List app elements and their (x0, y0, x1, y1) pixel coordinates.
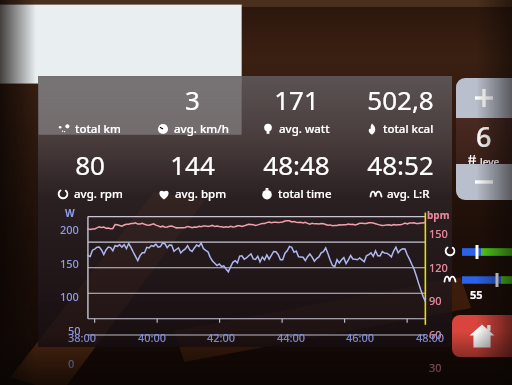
staticText: avg. L:R (387, 186, 430, 202)
staticText: avg. bpm (175, 186, 227, 202)
staticText: 3 (185, 82, 200, 117)
staticText: 30 (429, 360, 442, 375)
staticText: 44:00 (277, 330, 306, 345)
staticText: 50 (68, 323, 81, 338)
staticText: 0 (68, 356, 75, 371)
button[interactable]: Home (452, 315, 512, 357)
staticText: 150 (60, 256, 79, 271)
staticText: 48:52 (367, 147, 434, 182)
button[interactable]: 3 (141, 76, 244, 142)
staticText: 60 (429, 327, 442, 342)
button[interactable]: 502,8 (348, 76, 452, 142)
staticText: avg. watt (279, 121, 330, 137)
staticText: 90 (429, 293, 442, 308)
staticText: 150 (429, 226, 448, 241)
button[interactable]: 80 (38, 142, 141, 206)
staticText: leve (480, 155, 500, 164)
staticText: avg. rpm (74, 186, 123, 202)
staticText: 6 (476, 118, 492, 155)
staticText: total km (75, 121, 121, 137)
staticText: 42:00 (207, 330, 236, 345)
button[interactable]: 48:52 (348, 142, 452, 206)
button[interactable]: total km (38, 76, 141, 142)
staticText: 48:48 (263, 147, 330, 182)
staticText: 200 (60, 222, 79, 237)
staticText: avg. km/h (174, 121, 229, 137)
staticText: 55 (470, 287, 483, 302)
staticText: 48:00 (416, 330, 445, 345)
button[interactable]: 171 (244, 76, 348, 142)
staticText: 171 (274, 82, 319, 117)
staticText: 40:00 (138, 330, 167, 345)
staticText: 144 (170, 147, 215, 182)
staticText: bpm (427, 208, 450, 222)
staticText: 80 (75, 147, 105, 182)
staticText: 120 (429, 260, 448, 275)
staticText: total time (278, 186, 332, 202)
staticText: 38:00 (68, 330, 97, 345)
button[interactable]: 48:48 (244, 142, 348, 206)
button[interactable]: Decrease level (456, 164, 512, 200)
button[interactable]: Increase level (456, 78, 512, 118)
staticText: total kcal (383, 121, 434, 137)
staticText: 46:00 (346, 330, 375, 345)
staticText: 502,8 (367, 82, 434, 117)
button[interactable]: 144 (141, 142, 244, 206)
staticText: W (65, 206, 75, 220)
staticText: 100 (60, 289, 79, 304)
